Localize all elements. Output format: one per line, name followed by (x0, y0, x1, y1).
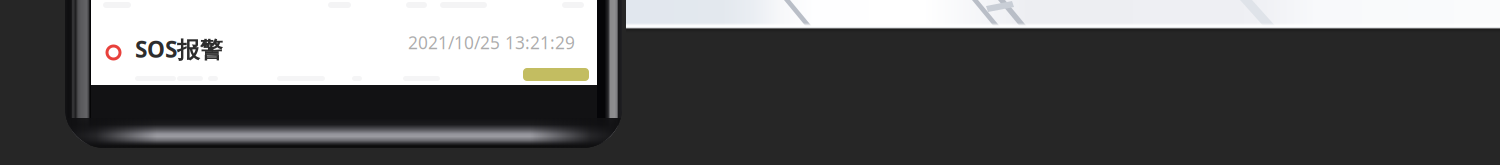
staticText: 2021/10/25 13:21:29 (408, 31, 575, 47)
button[interactable]: SOS报警 (91, 0, 597, 85)
button[interactable]: Confirm alarm (523, 68, 589, 81)
staticText: SOS报警 (135, 34, 223, 55)
